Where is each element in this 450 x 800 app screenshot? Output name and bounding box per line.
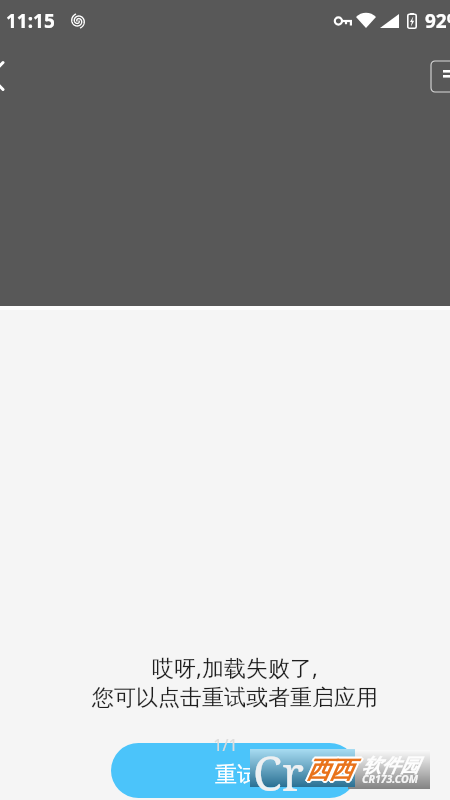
button[interactable]: Media viewer — [0, 0, 450, 306]
staticText: 西 — [330, 755, 354, 785]
staticText: 西 — [329, 755, 353, 785]
staticText: 西 — [306, 756, 330, 786]
button[interactable]: Menu — [431, 61, 450, 92]
staticText: 西 — [306, 754, 330, 784]
staticText: 您可以点击重试或者重启应用 — [92, 684, 378, 712]
staticText: 西 — [328, 755, 352, 785]
staticText: 西 — [307, 754, 331, 784]
staticText: 西 — [307, 756, 331, 786]
staticText: 西 — [328, 754, 352, 784]
staticText: 1/1 — [213, 734, 238, 756]
staticText: 西 — [306, 755, 330, 785]
staticText: 西 — [327, 755, 351, 785]
staticText: 西 — [329, 756, 353, 786]
staticText: 西 — [305, 756, 329, 786]
staticText: 西 — [331, 755, 355, 785]
staticText: 西 — [306, 755, 330, 785]
staticText: 西 — [307, 755, 331, 785]
staticText: 哎呀,加载失败了, — [152, 652, 318, 682]
staticText: 西 — [329, 757, 353, 787]
staticText: 西 — [328, 756, 352, 786]
staticText: 西 — [330, 756, 354, 786]
staticText: 西 — [329, 753, 353, 783]
staticText: 西 — [308, 755, 332, 785]
staticText: 西 — [305, 755, 329, 785]
staticText: 92% — [425, 8, 450, 34]
staticText: 西 — [306, 753, 330, 783]
button[interactable]: 重试 — [111, 743, 357, 798]
staticText: 西 — [329, 754, 353, 784]
staticText: 软件园 — [362, 754, 419, 778]
staticText: 西 — [305, 754, 329, 784]
staticText: Cr — [253, 741, 304, 800]
staticText: 11:15 — [6, 8, 55, 34]
staticText: 西 — [304, 755, 328, 785]
staticText: 重试 — [215, 761, 259, 789]
staticText: 西 — [330, 754, 354, 784]
staticText: 西 — [306, 757, 330, 787]
staticText: CR173.COM — [362, 772, 418, 786]
button[interactable]: Back — [0, 52, 20, 100]
staticText: 西 — [329, 755, 353, 785]
